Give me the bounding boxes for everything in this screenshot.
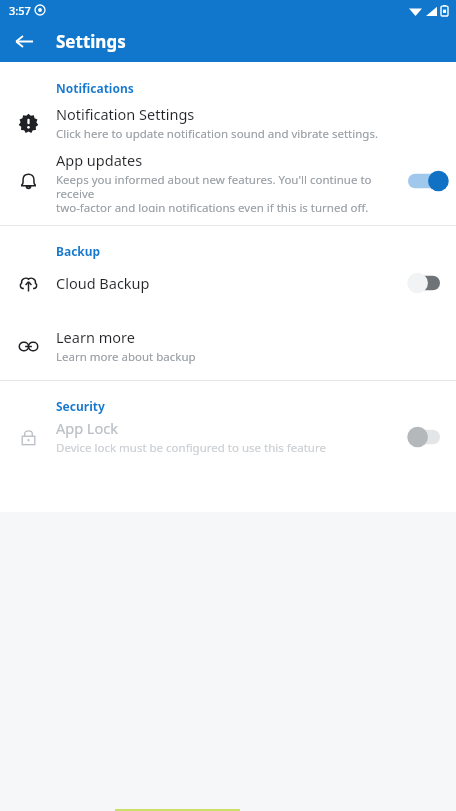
other: App Lock toggle, disabled [406,423,450,451]
staticText: Notification Settings [56,104,195,124]
staticText: Settings [56,30,126,53]
button[interactable]: Cloud Backup [0,259,456,307]
staticText: Click here to update notification sound … [56,126,378,142]
button[interactable]: Notification Settings [0,96,456,150]
staticText: Security [56,398,105,414]
staticText: Keeps you informed about new features. Y… [56,172,392,212]
button[interactable]: Learn more [0,323,456,369]
staticText: Cloud Backup [56,273,150,293]
staticText: Learn more about backup [56,349,196,365]
staticText: Backup [56,243,101,259]
staticText: Device lock must be configured to use th… [56,440,326,456]
staticText: App updates [56,150,143,170]
staticText: 3:57 [9,3,31,18]
staticText: Notifications [56,80,134,96]
button[interactable]: App updates [0,150,456,212]
button[interactable]: App updates toggle, on [406,167,450,195]
button[interactable]: App Lock [0,414,456,460]
button[interactable]: Back [6,23,42,59]
staticText: Learn more [56,327,135,347]
button[interactable]: Cloud Backup toggle, off [406,269,450,297]
staticText: App Lock [56,418,118,438]
